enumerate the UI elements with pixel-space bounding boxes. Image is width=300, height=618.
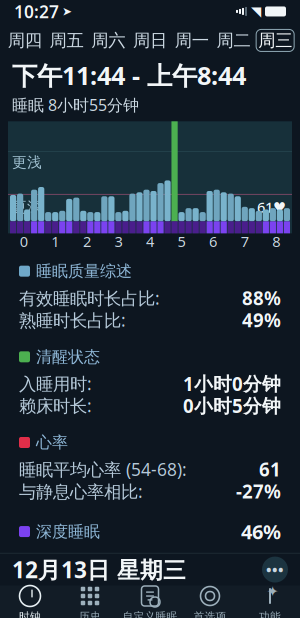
- staticText: 心率: [36, 433, 68, 452]
- staticText: 周四: [8, 30, 42, 51]
- staticText: 88%: [242, 286, 281, 310]
- button[interactable]: 周六: [87, 29, 129, 51]
- button[interactable]: 周二: [213, 29, 254, 51]
- staticText: 周六: [91, 30, 125, 51]
- staticText: 3: [114, 232, 122, 251]
- staticText: 赖床时长:: [19, 394, 92, 417]
- staticText: 功能: [259, 610, 281, 618]
- staticText: 自定义睡眠: [122, 610, 177, 618]
- staticText: 深度睡眠: [36, 522, 100, 541]
- button[interactable]: 周五: [46, 29, 87, 51]
- staticText: 更深: [12, 198, 42, 216]
- staticText: 时钟: [19, 610, 41, 618]
- staticText: 7: [241, 232, 249, 251]
- staticText: 0小时5分钟: [183, 393, 281, 418]
- staticText: ◥: [251, 4, 261, 19]
- button[interactable]: 功能: [240, 586, 300, 618]
- staticText: 首选项: [193, 610, 226, 618]
- staticText: 49%: [242, 308, 281, 332]
- staticText: 更浅: [12, 153, 42, 171]
- staticText: 与静息心率相比:: [19, 480, 143, 503]
- staticText: 5: [178, 232, 186, 251]
- staticText: 有效睡眠时长占比:: [19, 286, 160, 309]
- staticText: 周日: [133, 30, 167, 51]
- staticText: 入睡用时:: [19, 372, 92, 395]
- button[interactable]: 时钟: [0, 586, 60, 618]
- staticText: 历史: [79, 610, 101, 618]
- staticText: 周一: [175, 30, 209, 51]
- button[interactable]: More options: [262, 557, 288, 583]
- staticText: 睡眠平均心率 (54-68):: [19, 458, 187, 481]
- staticText: 1小时0分钟: [183, 371, 281, 396]
- staticText: 46%: [241, 518, 281, 545]
- staticText: ➤: [62, 5, 72, 18]
- staticText: 61: [259, 457, 281, 482]
- staticText: -27%: [236, 479, 281, 504]
- staticText: •••: [266, 560, 284, 579]
- button[interactable]: 自定义睡眠: [120, 586, 180, 618]
- staticText: 12月13日 星期三: [12, 554, 186, 585]
- button[interactable]: 首选项: [180, 586, 240, 618]
- staticText: 熟睡时长占比:: [19, 308, 126, 331]
- staticText: 6: [209, 232, 217, 251]
- staticText: ✦: [266, 583, 278, 600]
- staticText: 周五: [50, 30, 84, 51]
- button[interactable]: 周四: [4, 29, 46, 51]
- staticText: 0: [20, 232, 28, 251]
- staticText: 睡眠质量综述: [36, 261, 132, 281]
- staticText: 10:27: [14, 0, 59, 23]
- button[interactable]: 周三: [254, 29, 296, 51]
- staticText: 8: [272, 232, 280, 251]
- staticText: 2: [83, 232, 91, 251]
- staticText: 清醒状态: [36, 347, 100, 367]
- staticText: 61♥: [257, 197, 286, 217]
- staticText: 下午11:44 - 上午8:44: [12, 58, 246, 92]
- staticText: 4: [146, 232, 154, 251]
- button[interactable]: 历史: [60, 586, 120, 618]
- button[interactable]: 周一: [171, 29, 213, 51]
- staticText: 1: [51, 232, 59, 251]
- button[interactable]: 周日: [129, 29, 171, 51]
- staticText: 睡眠 8小时55分钟: [12, 94, 139, 115]
- staticText: 周三: [258, 30, 292, 51]
- staticText: 周二: [216, 30, 250, 51]
